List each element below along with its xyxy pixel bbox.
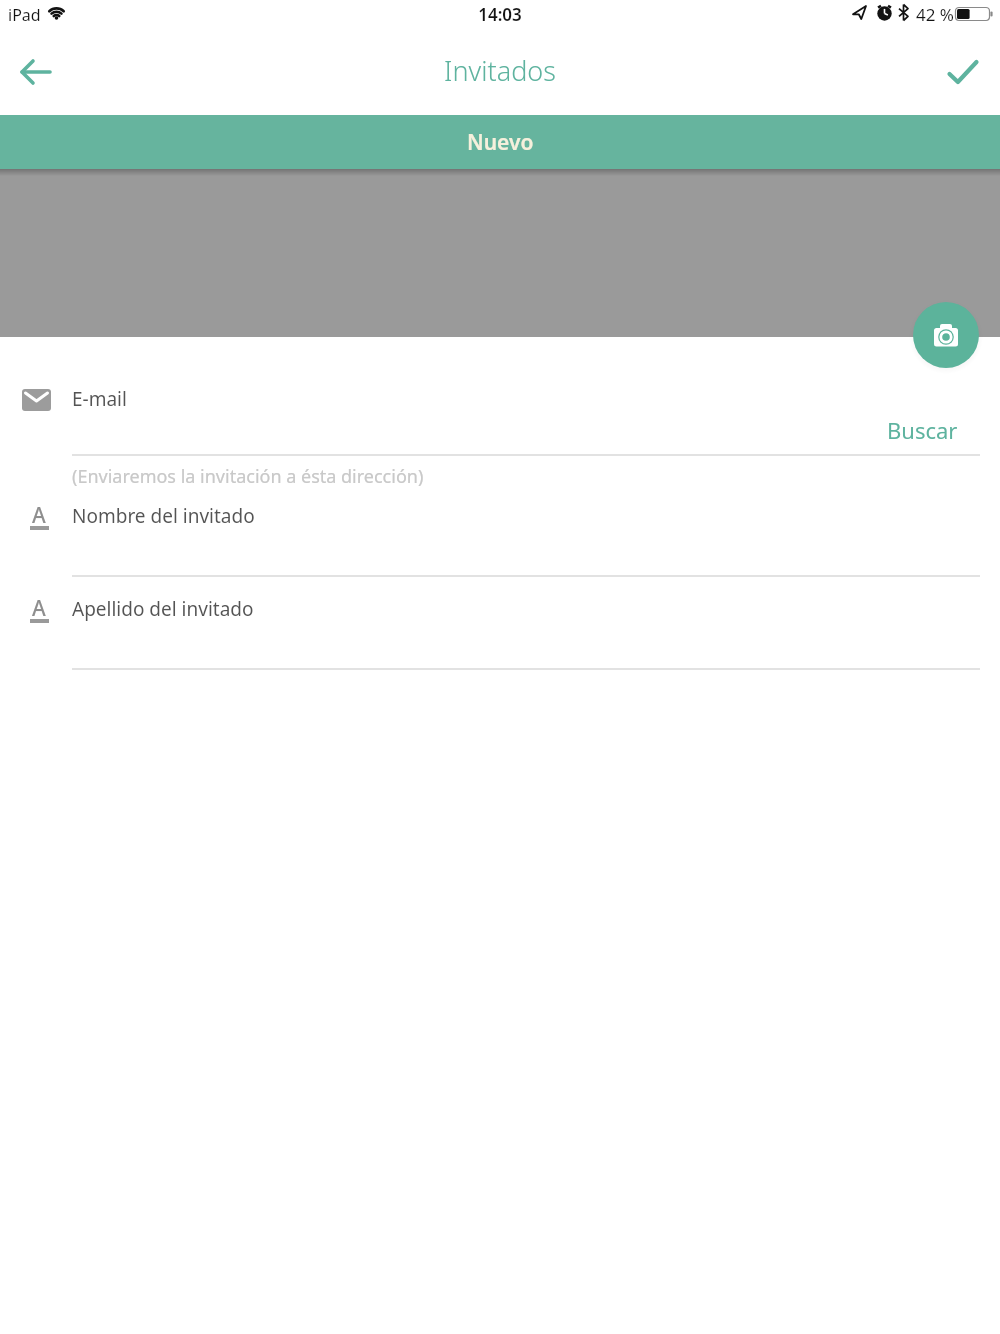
button[interactable] xyxy=(72,497,980,575)
staticText: Buscar xyxy=(887,415,958,445)
staticText: Nombre del invitado xyxy=(72,503,255,529)
staticText: A xyxy=(32,501,46,530)
button[interactable] xyxy=(72,590,980,668)
staticText: E-mail xyxy=(72,386,127,412)
staticText: Nuevo xyxy=(467,128,534,157)
staticText: 14:03 xyxy=(0,3,1000,26)
button[interactable] xyxy=(913,302,979,368)
staticText: 42 % xyxy=(916,3,954,26)
staticText: (Enviaremos la invitación a ésta direcci… xyxy=(72,464,424,489)
button[interactable] xyxy=(72,382,980,454)
staticText: Invitados xyxy=(0,52,1000,89)
button[interactable] xyxy=(10,54,62,90)
button[interactable]: Nuevo xyxy=(0,115,1000,169)
staticText: Apellido del invitado xyxy=(72,596,254,622)
staticText: A xyxy=(32,594,46,623)
button[interactable]: Buscar xyxy=(838,415,958,447)
button[interactable] xyxy=(938,52,988,92)
staticText: iPad xyxy=(8,4,41,26)
